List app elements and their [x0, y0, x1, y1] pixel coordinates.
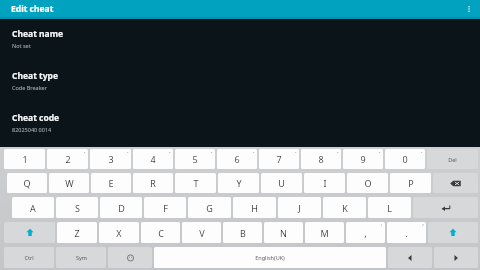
button[interactable]: Z — [57, 222, 97, 243]
button[interactable]: X — [99, 222, 139, 243]
staticText: ! — [381, 223, 383, 228]
button[interactable]: F — [144, 197, 186, 218]
staticText: B — [240, 227, 246, 239]
button[interactable]: Move cursor left — [388, 247, 432, 268]
button[interactable]: Q — [7, 173, 47, 193]
button[interactable]: 0 — [385, 149, 425, 169]
staticText: • — [127, 150, 129, 155]
button[interactable]: W — [49, 173, 89, 193]
staticText: 8 — [318, 153, 324, 165]
button[interactable]: 5 — [175, 149, 215, 169]
button[interactable]: D — [100, 197, 142, 218]
staticText: 6 — [234, 153, 240, 165]
staticText: F — [163, 202, 168, 214]
staticText: Sym — [76, 254, 87, 261]
button[interactable]: Backspace — [433, 173, 478, 193]
staticText: 3 — [108, 153, 114, 165]
staticText: U — [278, 177, 285, 189]
button[interactable]: I — [304, 173, 345, 193]
staticText: . — [405, 227, 408, 239]
button[interactable]: Ctrl — [4, 247, 54, 268]
staticText: Edit cheat — [11, 3, 54, 15]
button[interactable]: R — [133, 173, 173, 193]
staticText: • — [295, 150, 297, 155]
button[interactable]: T — [175, 173, 216, 193]
staticText: Cheat type — [12, 70, 59, 82]
button[interactable]: 2 — [47, 149, 88, 169]
staticText: • — [84, 150, 86, 155]
staticText: E — [108, 177, 114, 189]
staticText: ? — [422, 223, 424, 228]
staticText: Q — [23, 177, 31, 189]
button[interactable]: English(UK) — [154, 247, 386, 268]
staticText: , — [364, 227, 367, 239]
button[interactable]: 4 — [133, 149, 173, 169]
staticText: English(UK) — [255, 254, 285, 261]
staticText: Del — [448, 156, 457, 163]
staticText: 5 — [192, 153, 198, 165]
staticText: A — [30, 202, 36, 214]
button[interactable]: Move cursor right — [434, 247, 478, 268]
button[interactable]: , — [346, 222, 385, 243]
staticText: W — [65, 177, 74, 189]
button[interactable]: 9 — [343, 149, 383, 169]
staticText: Not set — [12, 42, 31, 49]
staticText: 1 — [22, 153, 28, 165]
button[interactable]: 8 — [301, 149, 341, 169]
button[interactable]: B — [223, 222, 262, 243]
staticText: J — [298, 202, 301, 214]
button[interactable]: More options — [458, 0, 480, 17]
button[interactable]: Enter — [413, 197, 478, 218]
staticText: V — [199, 227, 205, 239]
staticText: • — [211, 150, 213, 155]
staticText: O — [364, 177, 372, 189]
button[interactable]: Emoji and settings — [108, 247, 152, 268]
button[interactable]: N — [264, 222, 303, 243]
staticText: K — [342, 202, 348, 214]
button[interactable]: A — [12, 197, 54, 218]
staticText: • — [421, 150, 423, 155]
button[interactable]: Cheat type — [0, 69, 480, 92]
button[interactable]: 3 — [90, 149, 131, 169]
button[interactable]: P — [390, 173, 431, 193]
button[interactable]: J — [278, 197, 321, 218]
button[interactable]: L — [368, 197, 411, 218]
button[interactable]: . — [387, 222, 426, 243]
staticText: 2 — [65, 153, 71, 165]
staticText: 7 — [276, 153, 282, 165]
staticText: D — [118, 202, 125, 214]
staticText: S — [75, 202, 80, 214]
button[interactable]: Y — [218, 173, 259, 193]
button[interactable]: Cheat code — [0, 111, 480, 134]
staticText: Ctrl — [24, 254, 34, 261]
button[interactable]: H — [233, 197, 276, 218]
staticText: 0 — [402, 153, 408, 165]
button[interactable]: Cheat name — [0, 27, 480, 50]
button[interactable]: U — [261, 173, 302, 193]
button[interactable]: 1 — [4, 149, 45, 169]
button[interactable]: V — [182, 222, 221, 243]
button[interactable]: S — [56, 197, 98, 218]
button[interactable]: E — [91, 173, 131, 193]
staticText: Code Breaker — [12, 84, 47, 91]
staticText: L — [387, 202, 392, 214]
button[interactable]: O — [347, 173, 388, 193]
button[interactable]: 6 — [217, 149, 257, 169]
staticText: M — [320, 227, 329, 239]
staticText: H — [251, 202, 258, 214]
button[interactable]: Sym — [56, 247, 106, 268]
staticText: • — [169, 150, 171, 155]
button[interactable]: C — [141, 222, 180, 243]
button[interactable]: M — [305, 222, 344, 243]
staticText: I — [323, 177, 327, 189]
button[interactable]: Shift — [428, 222, 478, 243]
button[interactable]: G — [188, 197, 231, 218]
button[interactable]: Del — [427, 149, 478, 169]
button[interactable]: K — [323, 197, 366, 218]
button[interactable]: Shift — [4, 222, 55, 243]
staticText: 4 — [150, 153, 156, 165]
staticText: C — [158, 227, 164, 239]
staticText: N — [280, 227, 287, 239]
staticText: R — [150, 177, 156, 189]
button[interactable]: 7 — [259, 149, 299, 169]
